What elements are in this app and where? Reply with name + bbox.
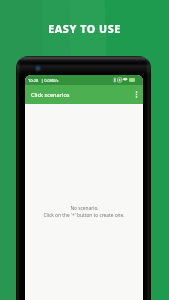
button[interactable]: More options <box>130 85 142 104</box>
staticText: No scenario. <box>70 205 99 212</box>
staticText: Click scenarios <box>31 91 70 99</box>
staticText: Click on the '+' button to create one. <box>43 212 125 219</box>
staticText: 10:28 <box>28 78 39 83</box>
staticText: | 0.0KB/s <box>41 78 59 83</box>
staticText: EASY TO USE <box>0 22 169 37</box>
